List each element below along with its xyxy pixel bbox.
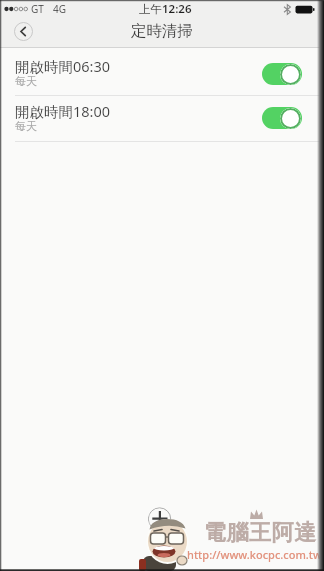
button[interactable] [262, 107, 302, 129]
staticText: 每天 [15, 74, 37, 88]
staticText: 開啟時間18:00 [15, 101, 111, 121]
button[interactable] [262, 63, 302, 85]
staticText: 4G [53, 2, 66, 16]
staticText: 開啟時間06:30 [15, 56, 111, 76]
staticText: 電腦王阿達 [204, 519, 317, 547]
button[interactable]: 開啟時間18:00 [0, 95, 324, 142]
button[interactable]: 開啟時間06:30 [0, 48, 324, 96]
staticText: 每天 [15, 119, 37, 133]
staticText: http://www.kocpc.com.tw [187, 547, 322, 562]
button[interactable] [14, 22, 33, 41]
staticText: GT [31, 2, 44, 16]
button[interactable] [148, 507, 172, 531]
staticText: 上午12:26 [139, 1, 192, 17]
staticText: 定時清掃 [131, 21, 193, 41]
